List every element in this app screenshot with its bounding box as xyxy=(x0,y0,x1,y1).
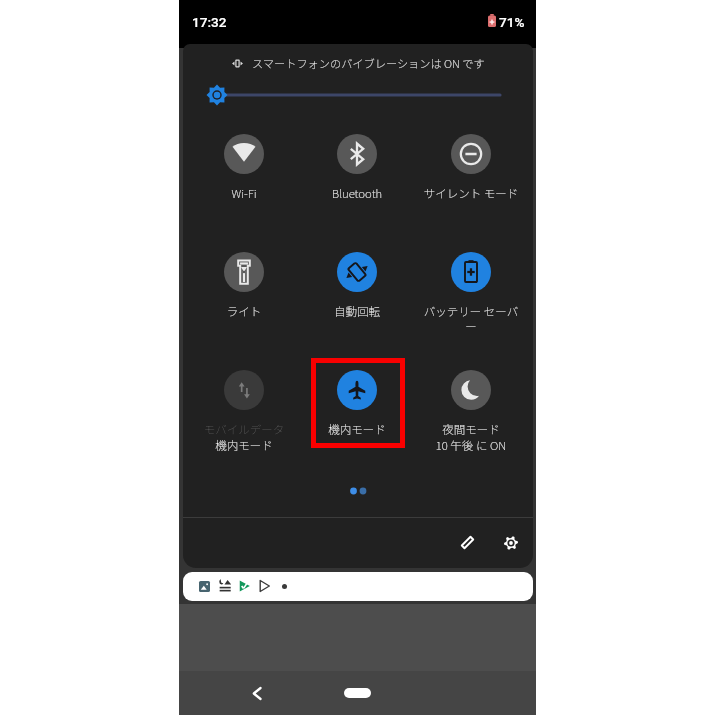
button[interactable]: スマートフォンのバイブレーションは ON です xyxy=(183,55,533,71)
button[interactable]: Brightness xyxy=(203,85,515,105)
staticText: モバイルデータ xyxy=(195,421,293,438)
button[interactable]: バッテリー セーバー xyxy=(414,240,528,344)
staticText: Wi-Fi xyxy=(195,185,293,202)
button[interactable]: 自動回転 xyxy=(300,240,414,344)
staticText: 機内モード xyxy=(308,421,406,438)
staticText: サイレント モード xyxy=(422,185,520,202)
staticText: 機内モード xyxy=(195,437,293,454)
button[interactable]: Home xyxy=(344,688,371,698)
button[interactable] xyxy=(183,572,533,601)
staticText: 17:32 xyxy=(192,14,227,30)
staticText: 10 午後 に ON xyxy=(422,437,520,454)
button[interactable]: Wi-Fi xyxy=(187,122,301,226)
button[interactable]: Bluetooth xyxy=(300,122,414,226)
staticText: 71% xyxy=(499,14,525,30)
button[interactable]: 夜間モード xyxy=(414,358,528,462)
button[interactable]: Edit tiles xyxy=(447,522,488,563)
staticText: バッテリー セーバー xyxy=(422,303,520,334)
staticText: ライト xyxy=(195,303,293,320)
staticText: 自動回転 xyxy=(308,303,406,320)
button[interactable]: Back xyxy=(243,679,271,707)
button[interactable]: ライト xyxy=(187,240,301,344)
button[interactable]: サイレント モード xyxy=(414,122,528,226)
staticText: スマートフォンのバイブレーションは ON です xyxy=(252,55,485,71)
button[interactable]: 機内モード xyxy=(300,358,414,462)
button[interactable]: Settings xyxy=(490,522,531,563)
staticText: Bluetooth xyxy=(308,185,406,202)
staticText: 夜間モード xyxy=(422,421,520,438)
button[interactable]: モバイルデータ xyxy=(187,358,301,462)
